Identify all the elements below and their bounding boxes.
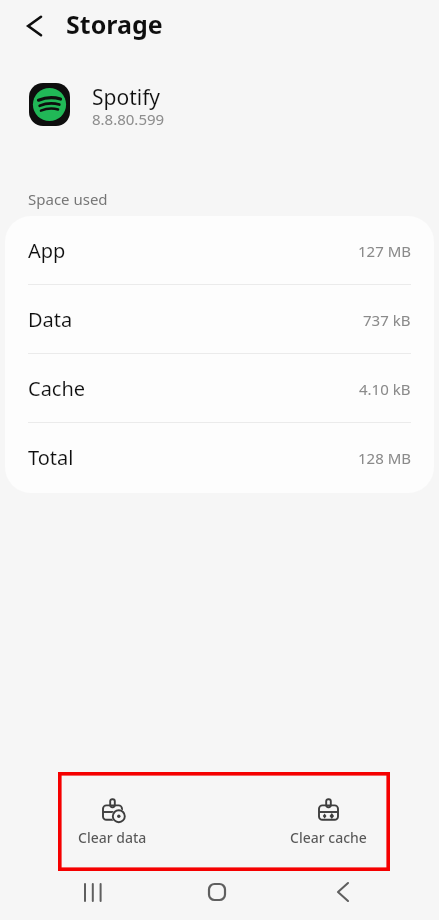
staticText: 127 MB [358,241,411,261]
staticText: Total [28,444,74,471]
button[interactable]: App [5,216,434,285]
staticText: 737 kB [363,310,411,330]
staticText: Clear cache [290,828,367,847]
button[interactable] [318,874,368,910]
staticText: 8.8.80.599 [92,109,165,129]
button[interactable]: Cache [5,354,434,423]
button[interactable]: Total [5,423,434,492]
button[interactable]: Clear data [57,798,167,850]
staticText: App [28,237,66,264]
button[interactable] [192,874,242,910]
button[interactable]: Data [5,285,434,354]
staticText: 128 MB [358,448,411,468]
staticText: Cache [28,375,86,402]
staticText: Space used [28,189,108,209]
staticText: Clear data [78,828,147,847]
staticText: Data [28,306,73,333]
staticText: Storage [66,7,163,41]
button[interactable] [14,6,54,46]
button[interactable]: Clear cache [273,798,383,850]
staticText: 4.10 kB [359,379,411,399]
staticText: Spotify [92,83,161,112]
button[interactable] [68,874,118,910]
